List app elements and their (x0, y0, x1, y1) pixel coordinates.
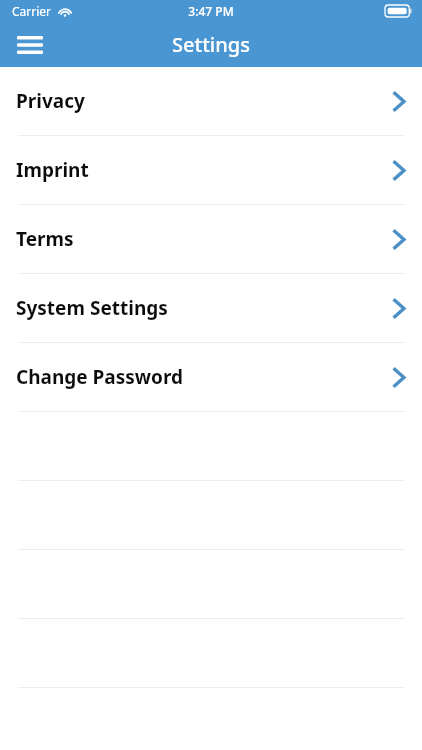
staticText: Settings (172, 31, 250, 58)
button[interactable]: Terms (0, 205, 422, 273)
other: Open (392, 160, 405, 181)
button[interactable]: System Settings (0, 274, 422, 342)
staticText: Privacy (16, 88, 85, 114)
button[interactable]: Privacy (0, 67, 422, 135)
staticText: Change Password (16, 364, 184, 390)
other: Open (392, 367, 405, 388)
staticText: Terms (16, 226, 74, 252)
other: Open (392, 229, 405, 250)
other: Open (392, 298, 405, 319)
button[interactable]: Menu (8, 23, 52, 67)
staticText: System Settings (16, 295, 168, 321)
other: Open (392, 91, 405, 112)
button[interactable]: Imprint (0, 136, 422, 204)
staticText: 3:47 PM (188, 3, 234, 19)
staticText: Carrier (12, 3, 52, 19)
button[interactable]: Change Password (0, 343, 422, 411)
staticText: Imprint (16, 157, 89, 183)
